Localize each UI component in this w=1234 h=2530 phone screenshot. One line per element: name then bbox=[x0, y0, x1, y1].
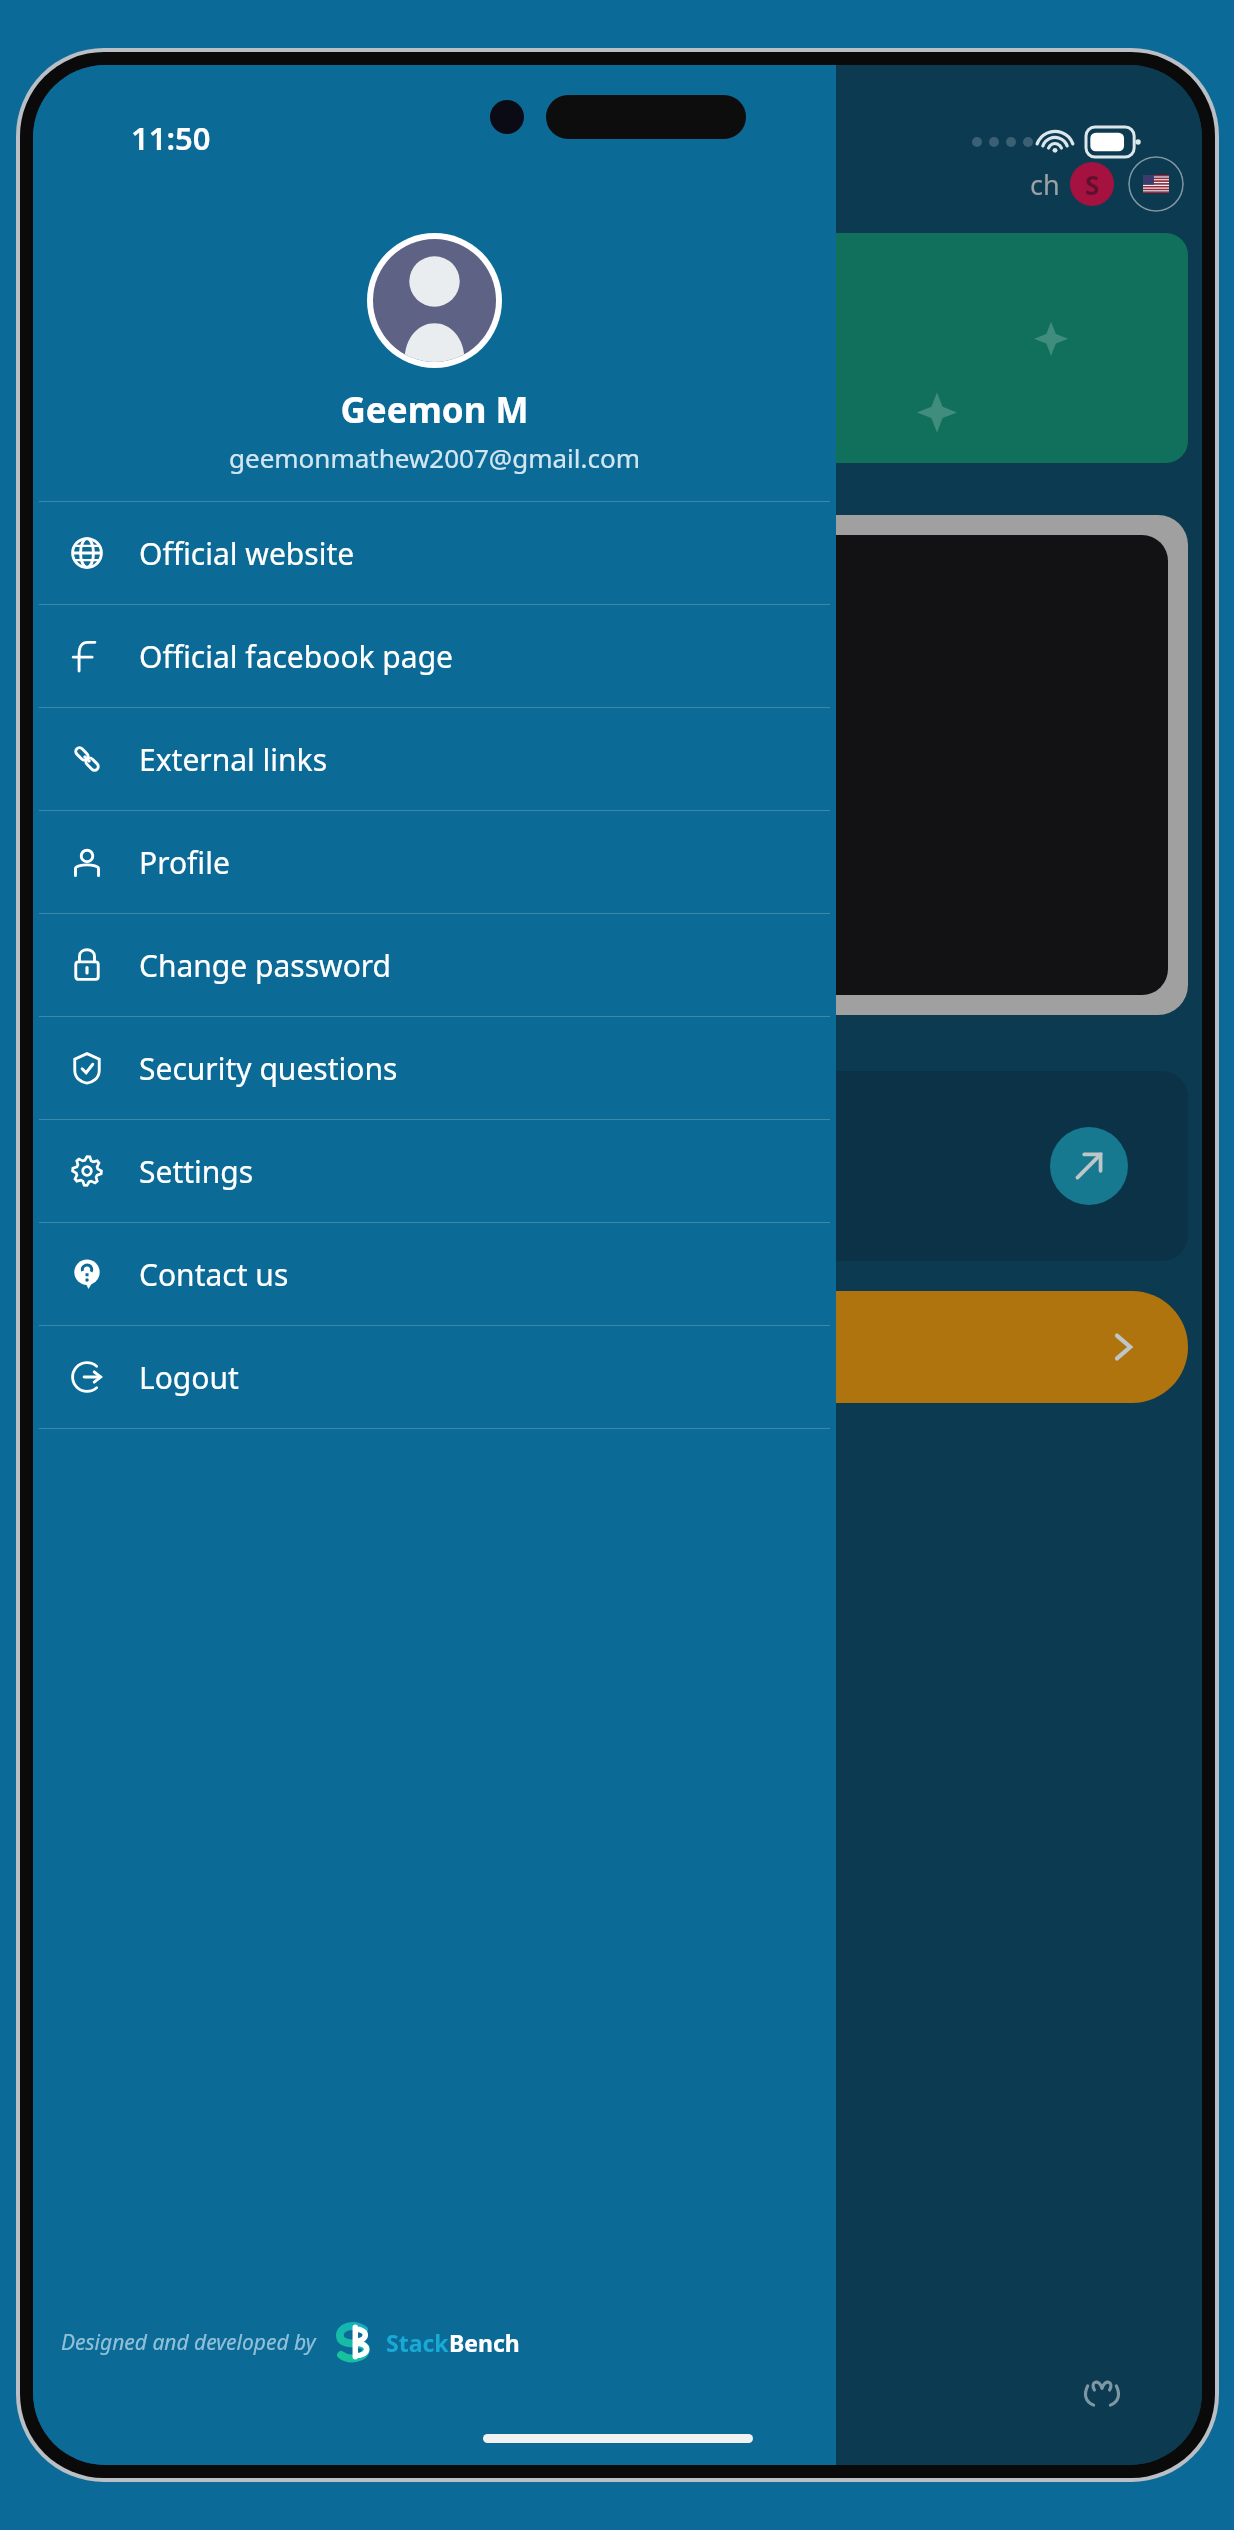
staticText: geemonmathew2007@gmail.com bbox=[33, 440, 836, 475]
staticText: Stack bbox=[386, 2327, 449, 2358]
staticText: Profile bbox=[139, 842, 230, 883]
staticText: Logout bbox=[139, 1357, 239, 1398]
button[interactable]: Care bbox=[1060, 2348, 1144, 2432]
staticText: Bench bbox=[449, 2327, 520, 2358]
staticText: Change password bbox=[139, 945, 392, 986]
staticText: Security questions bbox=[139, 1048, 398, 1089]
button[interactable]: Logout bbox=[33, 1326, 836, 1428]
staticText: Geemon M bbox=[33, 386, 836, 434]
button[interactable] bbox=[47, 1071, 1188, 1261]
button[interactable]: Official website bbox=[33, 502, 836, 604]
staticText: S bbox=[1085, 167, 1100, 202]
button[interactable]: Change password bbox=[33, 914, 836, 1016]
staticText: testv bbox=[643, 904, 709, 943]
button[interactable]: 👋 bbox=[47, 233, 1188, 463]
button[interactable]: Contact us bbox=[33, 1223, 836, 1325]
button[interactable]: Security questions bbox=[33, 1017, 836, 1119]
button[interactable]: External links bbox=[33, 708, 836, 810]
staticText: Official website bbox=[139, 533, 355, 574]
staticText: Official facebook page bbox=[139, 636, 454, 677]
button[interactable]: Account bbox=[1070, 162, 1114, 206]
staticText: Settings bbox=[139, 1151, 254, 1192]
button[interactable]: Profile photo bbox=[373, 239, 496, 362]
button[interactable]: Language bbox=[1128, 156, 1184, 212]
button[interactable]: Official facebook page bbox=[33, 605, 836, 707]
staticText: External links bbox=[139, 739, 328, 780]
staticText: Designed and developed by bbox=[61, 2328, 316, 2357]
button[interactable]: Settings bbox=[33, 1120, 836, 1222]
staticText: Contact us bbox=[139, 1254, 289, 1295]
staticText: ch bbox=[1030, 166, 1060, 203]
button[interactable] bbox=[47, 1291, 1188, 1403]
button[interactable]: Profile bbox=[33, 811, 836, 913]
button[interactable]: testv bbox=[47, 515, 1188, 1015]
staticText: 11:50 bbox=[131, 117, 211, 159]
